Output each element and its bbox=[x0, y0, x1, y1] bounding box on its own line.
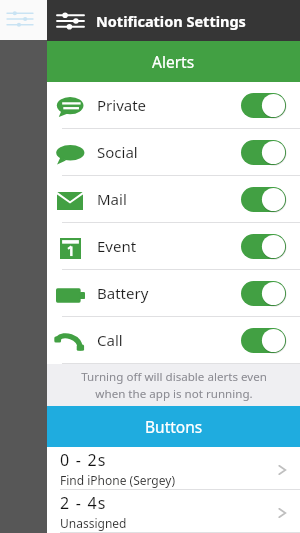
staticText: Notification Settings bbox=[96, 11, 246, 31]
button[interactable]: 0 - 2s bbox=[47, 447, 300, 490]
button[interactable]: Private bbox=[47, 82, 300, 129]
button[interactable]: Settings bbox=[57, 13, 84, 29]
button[interactable]: Call bbox=[47, 317, 300, 364]
staticText: Mail bbox=[97, 189, 127, 209]
staticText: Event bbox=[97, 236, 137, 256]
button[interactable]: Open settings bbox=[7, 11, 33, 27]
button[interactable]: Event bbox=[47, 223, 300, 270]
staticText: Turning off will disable alerts even whe… bbox=[81, 369, 267, 401]
staticText: Call bbox=[97, 330, 123, 350]
staticText: Unassigned bbox=[60, 515, 127, 531]
button[interactable]: 2 - 4s bbox=[47, 490, 300, 533]
staticText: Find iPhone (Sergey) bbox=[60, 472, 175, 488]
button[interactable]: Social bbox=[47, 129, 300, 176]
staticText: Battery bbox=[97, 283, 149, 303]
button[interactable]: Mail bbox=[47, 176, 300, 223]
button[interactable]: Alerts bbox=[47, 41, 300, 82]
staticText: Alerts bbox=[152, 51, 195, 72]
staticText: 0 - 2s bbox=[60, 449, 107, 471]
staticText: Buttons bbox=[145, 416, 203, 437]
staticText: 2 - 4s bbox=[60, 492, 107, 514]
staticText: Social bbox=[97, 142, 138, 162]
staticText: Private bbox=[97, 95, 147, 115]
button[interactable]: Battery bbox=[47, 270, 300, 317]
button[interactable]: Buttons bbox=[47, 406, 300, 447]
